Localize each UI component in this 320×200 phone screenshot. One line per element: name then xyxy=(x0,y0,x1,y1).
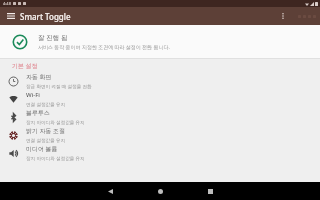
staticText: 자동 화면 xyxy=(26,73,52,81)
staticText: 연결 설정값을 유지 xyxy=(26,101,66,107)
staticText: 연결 설정값을 유지 xyxy=(26,137,66,143)
staticText: 잘 진행 됨 xyxy=(38,33,68,42)
staticText: 장치 아이디와 설정값을 유지 xyxy=(26,155,85,161)
button[interactable]: Wi-Fi xyxy=(0,90,320,108)
staticText: 서비스 동작 중이며 지정한 조건에 따라 설정이 전환 됩니다. xyxy=(38,44,170,51)
button[interactable]: 미디어 볼륨 xyxy=(0,144,320,162)
button[interactable]: More options xyxy=(276,9,290,23)
staticText: 장치 아이디와 설정값을 유지 xyxy=(26,119,85,125)
staticText: 잠금 화면이 켜질 때 설정을 전환 xyxy=(26,83,92,89)
button[interactable]: 잘 진행 됨 xyxy=(0,25,320,58)
staticText: 기본 설정 xyxy=(12,62,38,70)
button[interactable]: 자동 화면 xyxy=(0,72,320,90)
staticText: Wi-Fi xyxy=(26,91,40,99)
staticText: 4:48 xyxy=(3,1,11,6)
staticText: 미디어 볼륨 xyxy=(26,145,58,153)
staticText: 블루투스 xyxy=(26,109,50,117)
button[interactable]: 블루투스 xyxy=(0,108,320,126)
staticText: Smart Toggle xyxy=(20,11,71,22)
button[interactable]: Home xyxy=(142,182,178,200)
staticText: 밝기 자동 조절 xyxy=(26,127,66,135)
button[interactable]: Recent apps xyxy=(192,182,228,200)
button[interactable]: Open navigation drawer xyxy=(4,9,18,23)
button[interactable]: Back xyxy=(92,182,128,200)
button[interactable]: 밝기 자동 조절 xyxy=(0,126,320,144)
